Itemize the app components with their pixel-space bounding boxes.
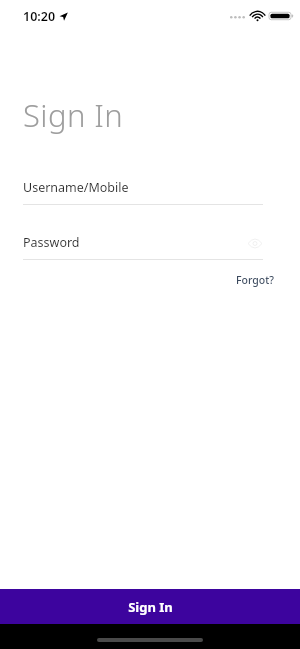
staticText: 10:20 bbox=[23, 8, 56, 25]
button[interactable]: Forgot? bbox=[234, 272, 276, 288]
button[interactable]: Password bbox=[23, 234, 263, 251]
button[interactable]: Sign In bbox=[0, 589, 300, 624]
staticText: Sign In bbox=[128, 598, 173, 616]
button[interactable]: Show password bbox=[247, 235, 263, 251]
staticText: Forgot? bbox=[236, 273, 274, 287]
staticText: Username/Mobile bbox=[23, 179, 129, 196]
staticText: Sign In bbox=[23, 94, 124, 136]
staticText: Password bbox=[23, 234, 80, 251]
button[interactable]: Username/Mobile bbox=[23, 179, 263, 196]
